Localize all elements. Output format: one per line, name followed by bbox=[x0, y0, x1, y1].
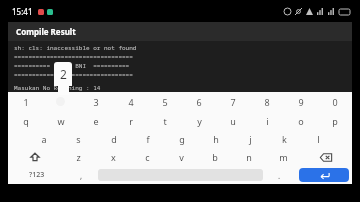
button[interactable]: Enter bbox=[299, 168, 349, 182]
staticText: b bbox=[212, 151, 218, 163]
button[interactable]: j bbox=[233, 130, 267, 148]
staticText: p bbox=[332, 115, 338, 127]
staticText: sh: cls: inaccessible or not found bbox=[14, 44, 137, 52]
button[interactable]: e bbox=[78, 111, 113, 130]
staticText: 8 bbox=[264, 96, 270, 108]
button[interactable]: 7 bbox=[216, 92, 250, 111]
button[interactable]: ?123 bbox=[8, 166, 65, 184]
button[interactable]: c bbox=[130, 148, 164, 166]
button[interactable]: d bbox=[96, 130, 131, 148]
staticText: 5 bbox=[162, 96, 168, 108]
button[interactable]: u bbox=[216, 111, 250, 130]
staticText: ================================= bbox=[14, 53, 133, 61]
staticText: , bbox=[80, 170, 83, 181]
staticText: x bbox=[111, 151, 116, 163]
button[interactable]: h bbox=[199, 130, 233, 148]
staticText: r bbox=[129, 115, 133, 127]
button[interactable]: x bbox=[96, 148, 130, 166]
button[interactable]: 6 bbox=[182, 92, 216, 111]
staticText: 7 bbox=[230, 96, 236, 108]
button[interactable]: p bbox=[318, 111, 352, 130]
button[interactable]: q bbox=[8, 111, 43, 130]
staticText: d bbox=[111, 133, 117, 145]
staticText: ========== BANK BNI ========== bbox=[14, 62, 130, 70]
staticText: a bbox=[41, 133, 47, 145]
staticText: l bbox=[317, 133, 320, 145]
staticText: ?123 bbox=[29, 170, 45, 180]
staticText: e bbox=[93, 115, 99, 127]
staticText: 0 bbox=[332, 96, 338, 108]
button[interactable]: b bbox=[198, 148, 232, 166]
button[interactable]: o bbox=[284, 111, 318, 130]
staticText: f bbox=[146, 133, 150, 145]
staticText: 1 bbox=[23, 96, 29, 108]
staticText: z bbox=[76, 151, 81, 163]
button[interactable]: 4 bbox=[113, 92, 148, 111]
staticText: s bbox=[76, 133, 81, 145]
button[interactable]: Backspace bbox=[300, 148, 352, 166]
button[interactable]: i bbox=[250, 111, 284, 130]
staticText: q bbox=[23, 115, 29, 127]
staticText: Masukan No Rekening : 14 bbox=[14, 84, 101, 92]
staticText: k bbox=[282, 133, 287, 145]
staticText: o bbox=[298, 115, 304, 127]
button[interactable]: a bbox=[26, 130, 61, 148]
button[interactable]: , bbox=[65, 166, 98, 184]
staticText: v bbox=[179, 151, 184, 163]
button[interactable]: w bbox=[43, 111, 78, 130]
staticText: g bbox=[179, 133, 185, 145]
staticText: 9 bbox=[298, 96, 304, 108]
button[interactable]: s bbox=[61, 130, 96, 148]
button[interactable]: v bbox=[164, 148, 198, 166]
button[interactable]: 1 bbox=[8, 92, 43, 111]
button[interactable]: r bbox=[113, 111, 148, 130]
staticText: 2 bbox=[60, 66, 67, 82]
staticText: u bbox=[230, 115, 236, 127]
staticText: y bbox=[197, 115, 202, 127]
button[interactable]: . bbox=[263, 166, 296, 184]
button[interactable]: 3 bbox=[78, 92, 113, 111]
staticText: w bbox=[57, 115, 65, 127]
button[interactable]: 5 bbox=[148, 92, 182, 111]
button[interactable]: k bbox=[267, 130, 301, 148]
staticText: 6 bbox=[196, 96, 202, 108]
staticText: i bbox=[266, 115, 269, 127]
staticText: c bbox=[145, 151, 150, 163]
staticText: 3 bbox=[93, 96, 99, 108]
button[interactable]: f bbox=[131, 130, 165, 148]
staticText: t bbox=[163, 115, 167, 127]
button[interactable]: 0 bbox=[318, 92, 352, 111]
button[interactable]: n bbox=[232, 148, 266, 166]
button[interactable]: t bbox=[148, 111, 182, 130]
button[interactable]: 9 bbox=[284, 92, 318, 111]
button[interactable]: m bbox=[266, 148, 300, 166]
staticText: h bbox=[213, 133, 219, 145]
staticText: m bbox=[279, 151, 288, 163]
staticText: j bbox=[249, 133, 252, 145]
button[interactable]: Shift bbox=[8, 148, 61, 166]
button[interactable]: z bbox=[61, 148, 96, 166]
staticText: . bbox=[278, 170, 281, 181]
staticText: Compile Result bbox=[16, 26, 76, 37]
staticText: 15:41 bbox=[12, 6, 33, 17]
staticText: 4 bbox=[128, 96, 134, 108]
button[interactable]: g bbox=[165, 130, 199, 148]
staticText: ================================= bbox=[14, 71, 133, 79]
button[interactable]: l bbox=[301, 130, 335, 148]
button[interactable]: 8 bbox=[250, 92, 284, 111]
button[interactable]: y bbox=[182, 111, 216, 130]
staticText: n bbox=[246, 151, 252, 163]
